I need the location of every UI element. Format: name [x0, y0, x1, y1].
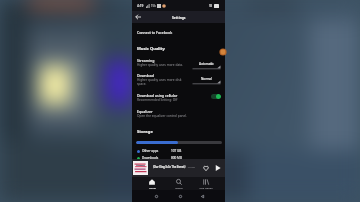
staticText: 800 MB [171, 156, 182, 160]
staticText: Settings [172, 15, 186, 19]
staticText: - Stubb [186, 165, 196, 168]
staticText: Automatic [199, 62, 214, 66]
staticText: Download using cellular [137, 93, 178, 98]
button[interactable]: Automatic [192, 59, 221, 70]
button[interactable]: Back [197, 191, 207, 201]
staticText: 4:19 [137, 4, 144, 8]
staticText: Higher quality uses more disk space. [137, 78, 190, 86]
staticText: Downloads [142, 156, 159, 160]
staticText: Open the equalizer control panel. [137, 114, 187, 118]
button[interactable]: Back [132, 11, 144, 23]
staticText: Storage [137, 129, 153, 135]
staticText: Equalizer [137, 109, 153, 114]
button[interactable]: Like [202, 164, 210, 172]
button[interactable]: Equalizer [132, 109, 225, 123]
button[interactable]: Download using cellular toggle [211, 94, 221, 99]
staticText: Connect to Facebook [137, 30, 173, 35]
staticText: (Our King Is In The Street) [153, 165, 186, 168]
button[interactable]: Search [166, 178, 192, 190]
staticText: Recommended Setting: Off [137, 98, 178, 102]
staticText: Home [149, 186, 156, 189]
staticText: Higher quality uses more data. [137, 63, 184, 67]
staticText: 15k [151, 4, 156, 8]
button[interactable]: (Our King Is In The Street) [132, 159, 225, 177]
staticText: 93 [209, 4, 213, 8]
button[interactable]: Home [175, 191, 185, 201]
button[interactable]: Download using cellular [132, 93, 225, 107]
button[interactable]: Recents [151, 191, 161, 201]
button[interactable]: Normal [192, 74, 221, 85]
staticText: Other apps [142, 149, 159, 153]
staticText: Streaming [137, 58, 155, 63]
button[interactable]: Play [214, 164, 222, 172]
button[interactable]: Download [132, 73, 225, 87]
staticText: Your Library [199, 186, 213, 189]
button[interactable]: Your Library [193, 178, 219, 190]
staticText: Download [137, 73, 154, 78]
staticText: Music Quality [137, 46, 165, 52]
button[interactable]: Home [139, 178, 165, 190]
staticText: Search [175, 186, 183, 189]
staticText: 107 GB [171, 149, 182, 153]
button[interactable]: Streaming [132, 58, 225, 72]
button[interactable]: Connect to Facebook [132, 27, 225, 37]
staticText: Normal [201, 77, 212, 81]
